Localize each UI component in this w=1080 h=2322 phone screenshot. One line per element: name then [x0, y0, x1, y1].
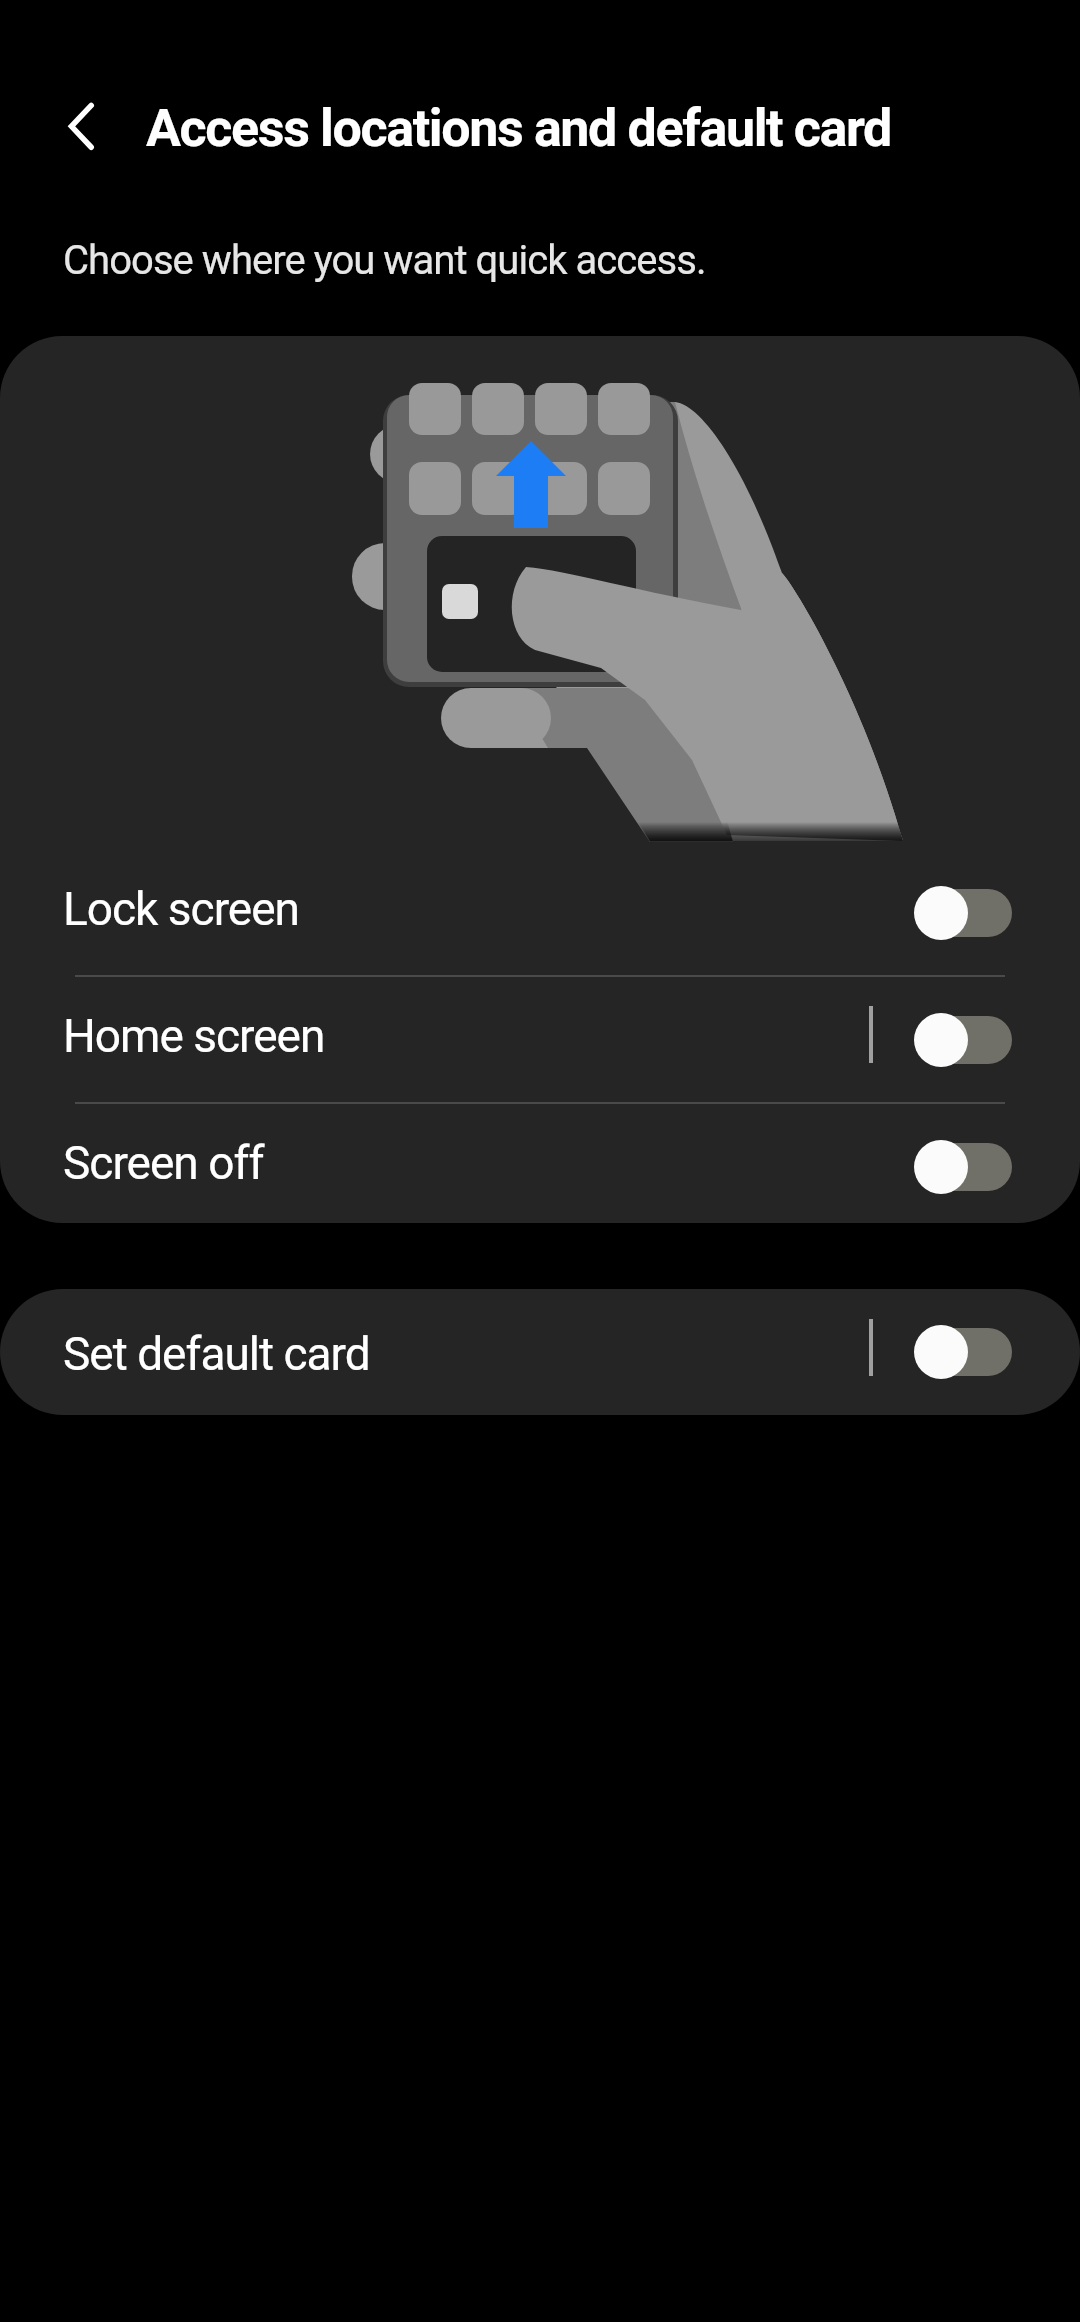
staticText: Home screen: [63, 1009, 325, 1063]
staticText: Lock screen: [63, 882, 299, 936]
button[interactable]: Set default card: [0, 1289, 1080, 1415]
staticText: Screen off: [63, 1136, 264, 1190]
staticText: Choose where you want quick access.: [63, 237, 706, 284]
button[interactable]: Lock screen: [0, 850, 1080, 975]
button[interactable]: Screen off: [0, 1104, 1080, 1223]
button[interactable]: Back: [42, 84, 130, 172]
staticText: Set default card: [63, 1327, 370, 1381]
staticText: Access locations and default card: [146, 98, 891, 159]
button[interactable]: Home screen: [0, 977, 1080, 1102]
